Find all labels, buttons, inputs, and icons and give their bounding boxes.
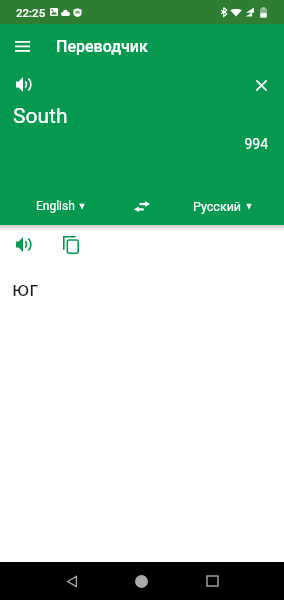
button[interactable]: Listen to source text <box>7 69 38 100</box>
button[interactable]: Home <box>119 562 164 600</box>
button[interactable]: Open navigation menu <box>6 30 38 62</box>
staticText: Переводчик <box>56 37 148 56</box>
button[interactable]: Русский <box>176 189 268 223</box>
button[interactable]: Back <box>49 562 94 600</box>
staticText: Русский <box>193 199 242 214</box>
button[interactable]: English <box>20 189 100 223</box>
button[interactable]: Clear text <box>246 70 277 101</box>
staticText: 22:25 <box>16 6 46 19</box>
staticText: South <box>13 104 68 129</box>
staticText: юг <box>12 277 38 302</box>
button[interactable]: Listen to translation <box>7 229 38 260</box>
button[interactable]: Copy translation <box>55 229 86 260</box>
staticText: 994 <box>0 136 268 152</box>
button[interactable]: Recent apps <box>190 562 235 600</box>
staticText: English <box>36 199 75 213</box>
button[interactable]: Swap languages <box>120 189 164 223</box>
